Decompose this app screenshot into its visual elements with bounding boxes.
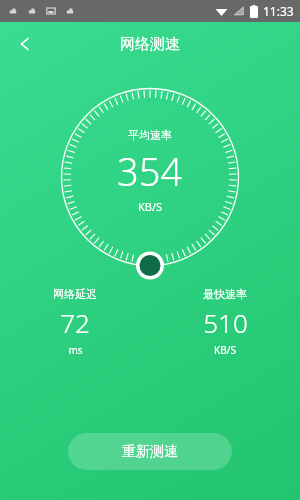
- staticText: 354: [117, 145, 183, 197]
- staticText: 网络测速: [120, 35, 180, 54]
- staticText: ms: [68, 343, 83, 357]
- staticText: KB/S: [214, 343, 236, 357]
- staticText: KB/S: [138, 199, 163, 214]
- staticText: 最快速率: [203, 287, 247, 301]
- staticText: 510: [203, 305, 248, 340]
- staticText: 72: [60, 305, 90, 340]
- button[interactable]: Back: [6, 25, 44, 63]
- staticText: 平均速率: [128, 128, 172, 142]
- button[interactable]: 重新测速: [68, 433, 232, 470]
- staticText: 网络延迟: [53, 287, 97, 301]
- staticText: 重新测速: [122, 443, 178, 461]
- staticText: 11:33: [263, 3, 294, 19]
